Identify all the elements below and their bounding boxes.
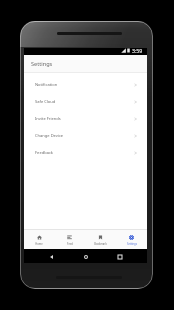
button[interactable]: Notification — [24, 76, 147, 93]
button[interactable]: Feedback — [24, 144, 147, 161]
button[interactable]: Back — [46, 251, 57, 262]
button[interactable]: Home — [24, 230, 54, 249]
button[interactable]: Settings — [116, 230, 147, 249]
staticText: Bookmark — [94, 242, 107, 246]
button[interactable]: Invite Friends — [24, 110, 147, 127]
button[interactable]: Change Device — [24, 127, 147, 144]
staticText: 3:59 — [132, 47, 143, 54]
staticText: Feed — [67, 242, 73, 246]
staticText: Settings — [127, 242, 137, 246]
staticText: Settings — [31, 60, 53, 68]
staticText: Home — [35, 242, 43, 246]
button[interactable]: Home — [80, 251, 91, 262]
button[interactable]: Bookmark — [85, 230, 116, 249]
staticText: Invite Friends — [35, 116, 61, 122]
staticText: Change Device — [35, 133, 64, 139]
staticText: Feedback — [35, 150, 54, 156]
button[interactable]: Recents — [114, 251, 125, 262]
button[interactable]: Safe Cloud — [24, 93, 147, 110]
button[interactable]: Feed — [54, 230, 85, 249]
staticText: Notification — [35, 82, 58, 88]
staticText: Safe Cloud — [35, 99, 56, 105]
